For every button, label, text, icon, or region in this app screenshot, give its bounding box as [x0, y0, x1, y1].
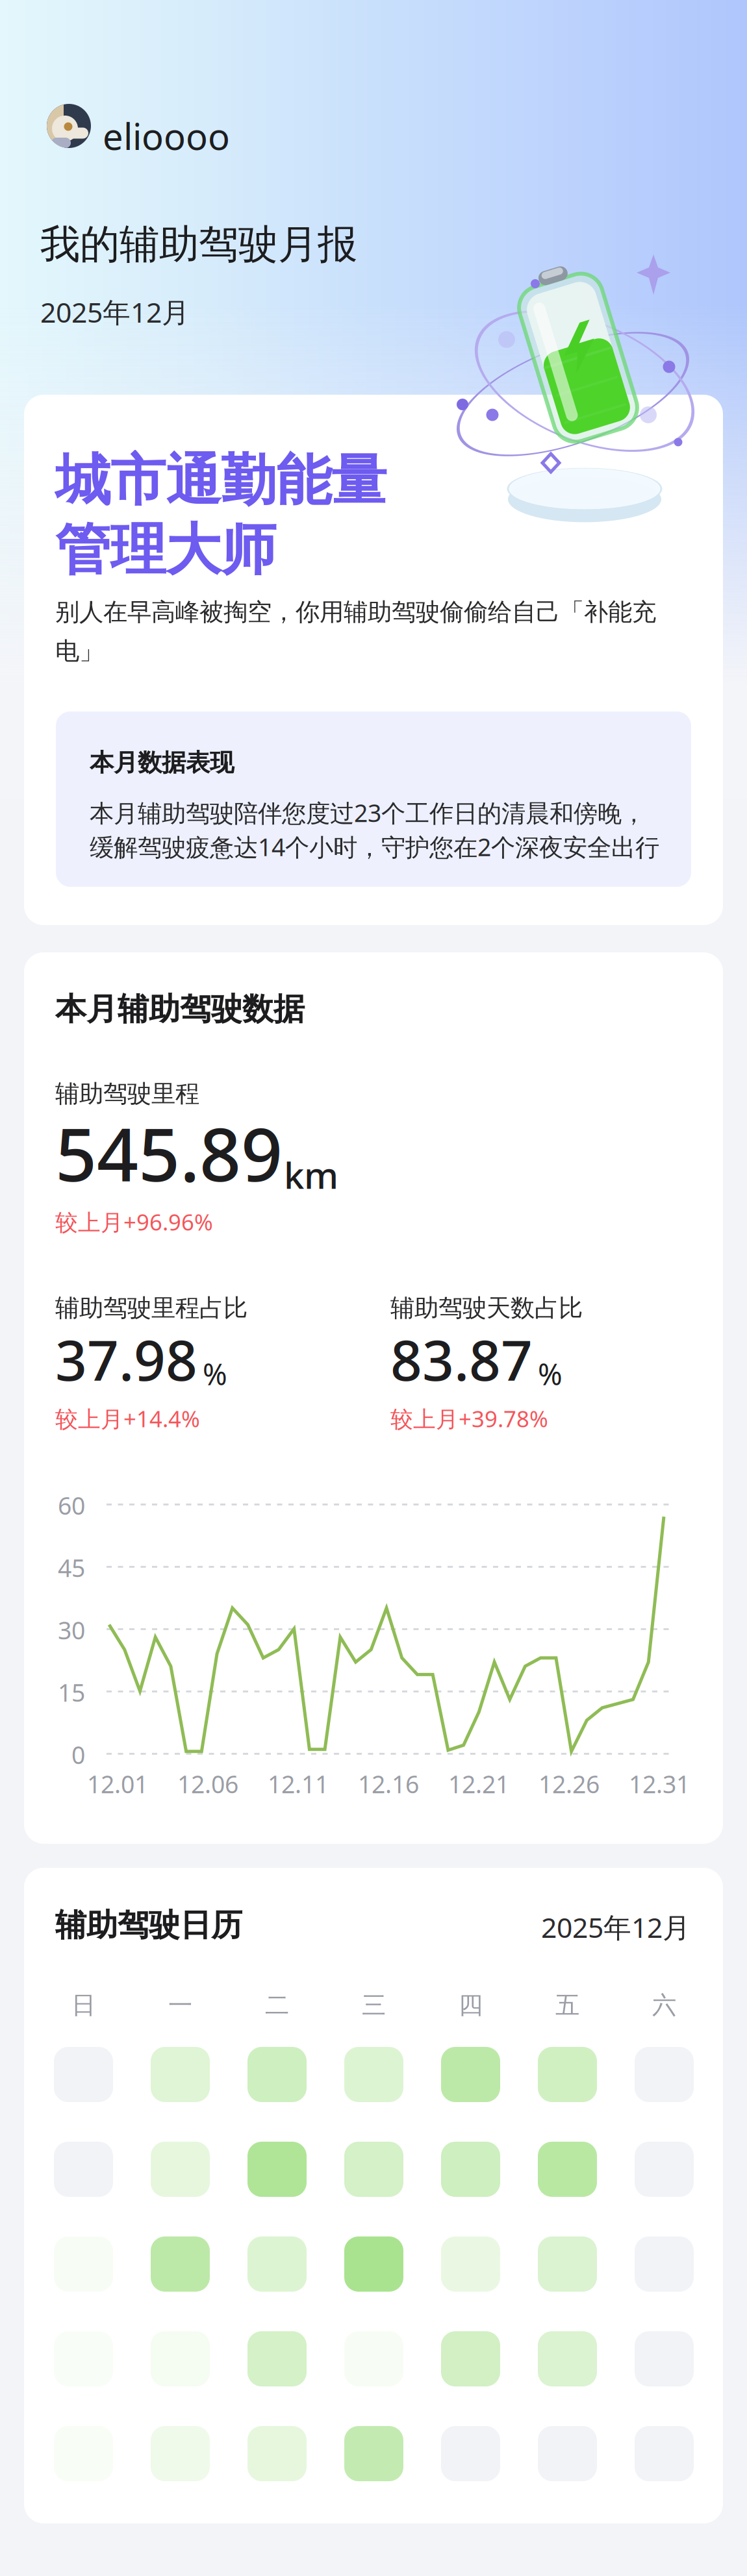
- staticText: km: [284, 1151, 338, 1199]
- staticText: 六: [652, 1990, 676, 2020]
- staticText: 较上月+39.78%: [390, 1404, 548, 1433]
- staticText: 城市通勤能量: [55, 447, 386, 515]
- staticText: elioooo: [103, 112, 230, 160]
- staticText: 四: [459, 1990, 483, 2020]
- staticText: 12.26: [538, 1768, 600, 1800]
- staticText: 12.11: [268, 1768, 329, 1800]
- staticText: 二: [265, 1990, 289, 2020]
- staticText: 一: [168, 1990, 192, 2020]
- staticText: 2025年12月: [40, 293, 190, 330]
- staticText: %: [203, 1354, 227, 1393]
- staticText: 12.06: [177, 1768, 238, 1800]
- staticText: 45: [58, 1552, 85, 1584]
- staticText: 15: [58, 1676, 85, 1708]
- staticText: 12.01: [87, 1768, 148, 1800]
- staticText: %: [538, 1354, 563, 1393]
- staticText: 我的辅助驾驶月报: [40, 220, 357, 269]
- staticText: 较上月+96.96%: [55, 1207, 213, 1237]
- staticText: 辅助驾驶日历: [55, 1906, 242, 1944]
- staticText: 30: [58, 1614, 85, 1646]
- staticText: 本月辅助驾驶数据: [55, 990, 305, 1028]
- staticText: 37.98: [55, 1322, 197, 1396]
- staticText: 545.89: [55, 1105, 283, 1201]
- staticText: 本月辅助驾驶陪伴您度过23个工作日的清晨和傍晚，缓解驾驶疲惫达14个小时，守护您…: [90, 797, 659, 863]
- staticText: 12.16: [358, 1768, 419, 1800]
- staticText: 60: [58, 1489, 85, 1521]
- staticText: 12.31: [629, 1768, 690, 1800]
- staticText: 别人在早高峰被掏空，你用辅助驾驶偷偷给自己「补能充电」: [55, 597, 656, 666]
- staticText: 辅助驾驶里程占比: [55, 1293, 247, 1323]
- staticText: 辅助驾驶天数占比: [390, 1293, 583, 1323]
- staticText: 管理大师: [55, 516, 276, 584]
- staticText: 辅助驾驶里程: [55, 1079, 199, 1109]
- staticText: 五: [555, 1990, 579, 2020]
- staticText: 日: [71, 1990, 95, 2020]
- staticText: 12.21: [448, 1768, 509, 1800]
- staticText: 较上月+14.4%: [55, 1404, 200, 1433]
- staticText: 本月数据表现: [90, 748, 234, 778]
- staticText: 83.87: [390, 1322, 533, 1396]
- staticText: 0: [71, 1739, 85, 1771]
- staticText: 三: [362, 1990, 386, 2020]
- staticText: 2025年12月: [541, 1909, 690, 1945]
